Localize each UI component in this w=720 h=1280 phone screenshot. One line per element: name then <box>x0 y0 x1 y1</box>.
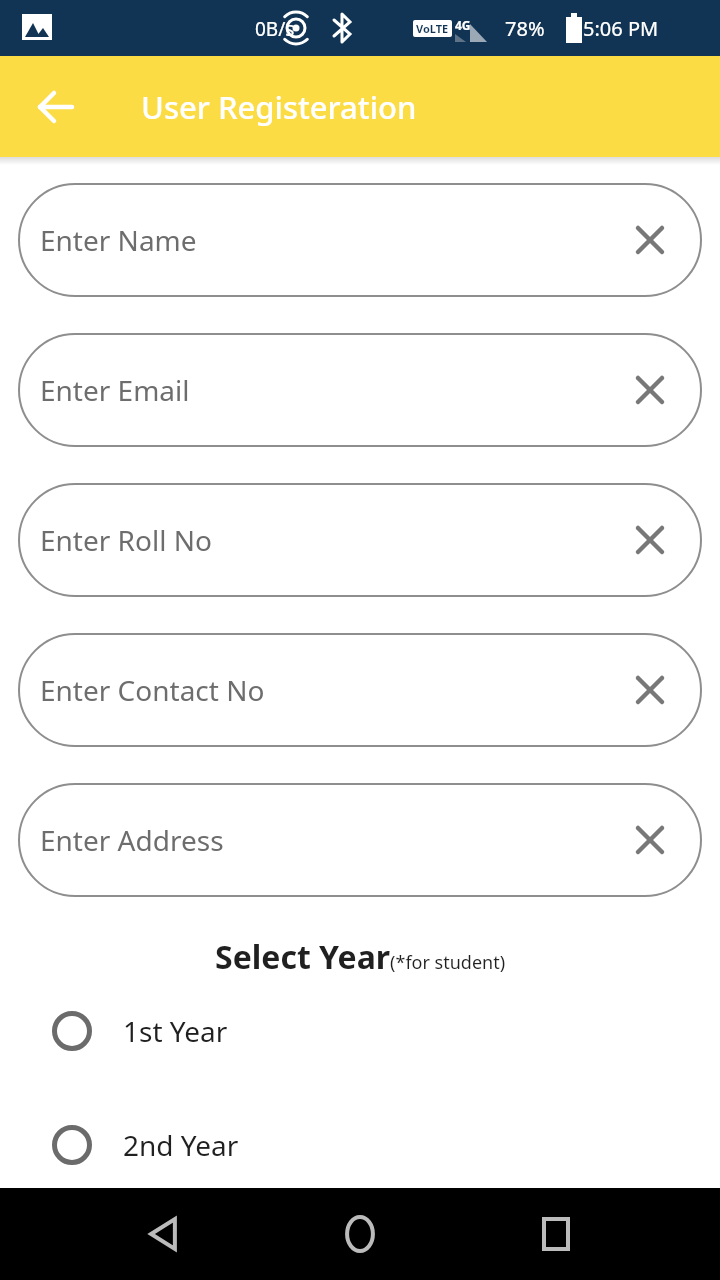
button[interactable]: Back <box>24 75 88 139</box>
staticText: User Registeration <box>141 86 417 128</box>
button[interactable]: Enter Contact No <box>18 633 702 747</box>
staticText: 1st Year <box>123 1012 228 1050</box>
button[interactable]: Clear Enter Name <box>628 218 672 262</box>
button[interactable]: Clear Enter Roll No <box>628 518 672 562</box>
staticText: 4G <box>455 17 471 33</box>
staticText: 0B/s <box>255 16 295 42</box>
button[interactable]: Enter Address <box>18 783 702 897</box>
staticText: Enter Contact No <box>40 671 628 709</box>
staticText: Enter Email <box>40 371 628 409</box>
staticText: 78% <box>505 15 545 42</box>
button[interactable]: Recents <box>524 1202 588 1266</box>
button[interactable]: Clear Enter Email <box>628 368 672 412</box>
button[interactable]: Enter Roll No <box>18 483 702 597</box>
staticText: 5:06 PM <box>583 15 659 42</box>
staticText: VoLTE <box>416 21 449 36</box>
button[interactable]: Enter Name <box>18 183 702 297</box>
button[interactable]: 2nd Year <box>0 1117 720 1173</box>
button[interactable]: Clear Enter Address <box>628 818 672 862</box>
button[interactable]: 1st Year <box>0 1003 720 1059</box>
staticText: Enter Name <box>40 221 628 259</box>
staticText: Enter Address <box>40 821 628 859</box>
button[interactable]: Back <box>132 1202 196 1266</box>
button[interactable]: Clear Enter Contact No <box>628 668 672 712</box>
staticText: Enter Roll No <box>40 521 628 559</box>
staticText: Select Year(*for student) <box>215 935 506 979</box>
button[interactable]: Home <box>328 1202 392 1266</box>
staticText: 2nd Year <box>123 1126 239 1164</box>
button[interactable]: Enter Email <box>18 333 702 447</box>
